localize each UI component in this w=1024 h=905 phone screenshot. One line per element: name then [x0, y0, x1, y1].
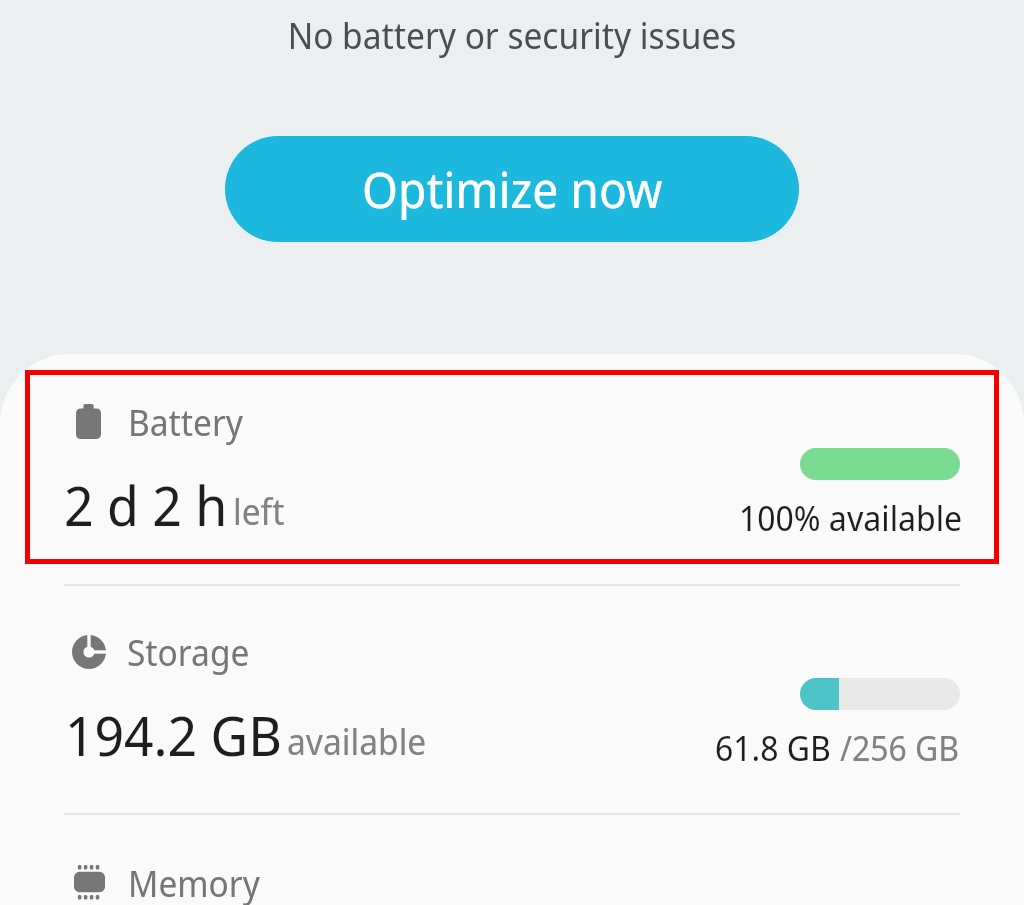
staticText: 61.8 GB [715, 725, 840, 771]
other: Memory [74, 865, 105, 900]
other: Battery [76, 404, 101, 439]
staticText: left [233, 487, 285, 535]
staticText: 2 d 2 h [64, 467, 228, 542]
staticText: 194.2 GB [65, 697, 282, 772]
button[interactable]: Optimize now [225, 136, 799, 242]
staticText: available [287, 717, 427, 765]
staticText: Memory [128, 859, 260, 905]
staticText: No battery or security issues [0, 11, 1024, 59]
staticText: Optimize now [362, 156, 663, 223]
staticText: Battery [128, 398, 244, 446]
staticText: /256 GB [840, 725, 960, 771]
button[interactable]: Battery [0, 354, 1024, 590]
button[interactable]: Storage [0, 586, 1024, 815]
staticText: 100% available [739, 495, 963, 541]
staticText: Storage [127, 628, 250, 676]
button[interactable]: Memory [0, 815, 1024, 905]
other: Battery row highlight [25, 370, 999, 564]
other: Storage [72, 635, 106, 669]
